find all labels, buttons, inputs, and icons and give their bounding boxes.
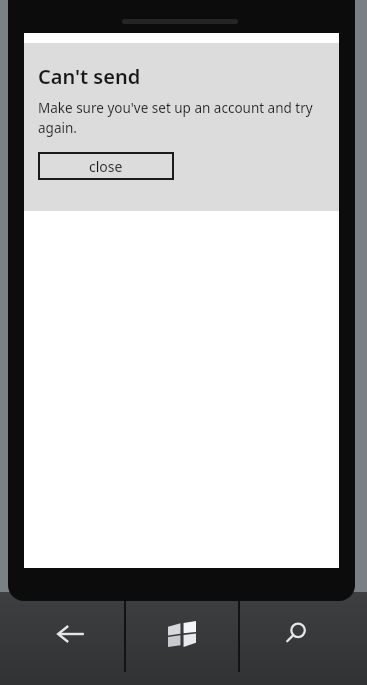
staticText: Can't send — [38, 63, 141, 90]
button[interactable]: Start — [153, 605, 211, 663]
staticText: Make sure you've set up an account and t… — [38, 99, 327, 137]
staticText: close — [89, 157, 123, 176]
button[interactable]: close — [38, 152, 174, 180]
button[interactable]: Search — [268, 605, 324, 663]
button[interactable]: Back — [43, 605, 99, 663]
